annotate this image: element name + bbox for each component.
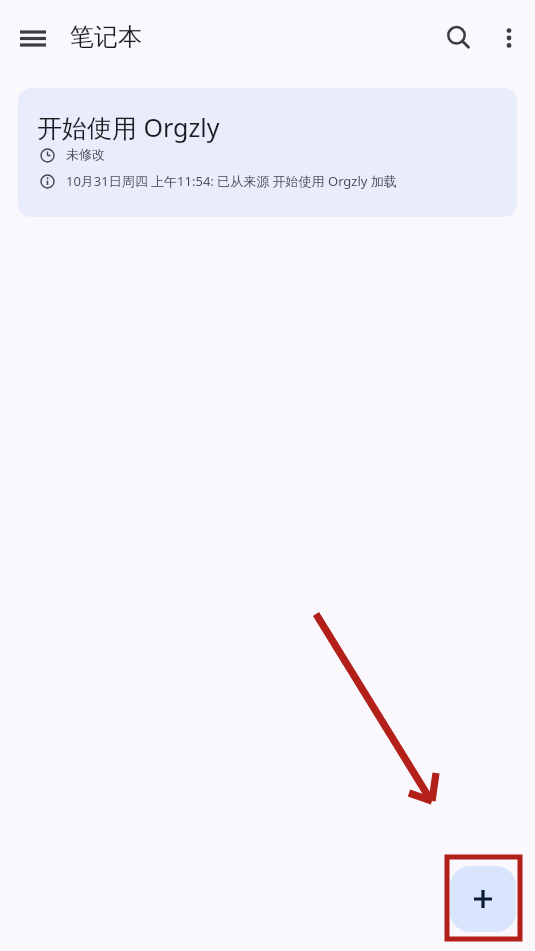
button[interactable]: 开始使用 Orgzly: [18, 88, 517, 217]
button[interactable]: Open navigation drawer: [13, 18, 53, 58]
button[interactable]: Search: [439, 18, 479, 58]
staticText: 10月31日周四 上午11:54: 已从来源 开始使用 Orgzly 加载: [66, 172, 397, 190]
button[interactable]: More options: [489, 18, 529, 58]
button[interactable]: Create new note: [450, 866, 516, 932]
staticText: 未修改: [66, 146, 105, 162]
staticText: 笔记本: [70, 22, 142, 52]
staticText: 开始使用 Orgzly: [37, 110, 220, 144]
